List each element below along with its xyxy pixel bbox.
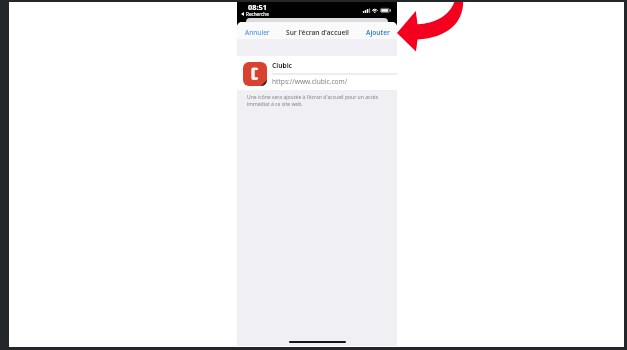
staticText: Sur l'écran d'accueil	[286, 28, 349, 37]
staticText: Ajouter	[366, 28, 390, 37]
button[interactable]: Annuler	[245, 28, 270, 37]
staticText: https://www.clubic.com/	[272, 77, 348, 86]
other: Arrow pointing to Add button	[0, 0, 627, 350]
button[interactable]: Ajouter	[366, 28, 390, 37]
staticText: Une icône sera ajoutée à l'écran d'accue…	[247, 94, 389, 107]
staticText: Recherche	[246, 11, 269, 17]
staticText: Clubic	[272, 61, 293, 70]
staticText: 08:51	[248, 2, 267, 12]
staticText: Annuler	[245, 28, 270, 37]
